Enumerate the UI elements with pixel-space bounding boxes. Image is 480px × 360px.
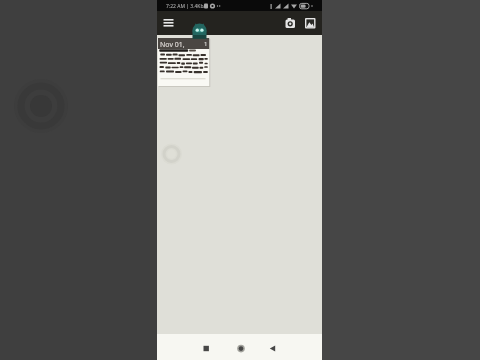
button[interactable] bbox=[199, 340, 211, 354]
button[interactable] bbox=[235, 340, 247, 354]
button[interactable] bbox=[159, 13, 179, 32]
staticText: 7:22 AM | 3.4Kb/s bbox=[166, 3, 208, 10]
staticText: Nov 01, bbox=[160, 40, 185, 50]
staticText: 1 bbox=[204, 40, 208, 48]
button[interactable]: Nov 01, bbox=[158, 38, 210, 86]
button[interactable] bbox=[266, 340, 278, 354]
button[interactable] bbox=[303, 15, 318, 32]
button[interactable] bbox=[283, 15, 298, 32]
